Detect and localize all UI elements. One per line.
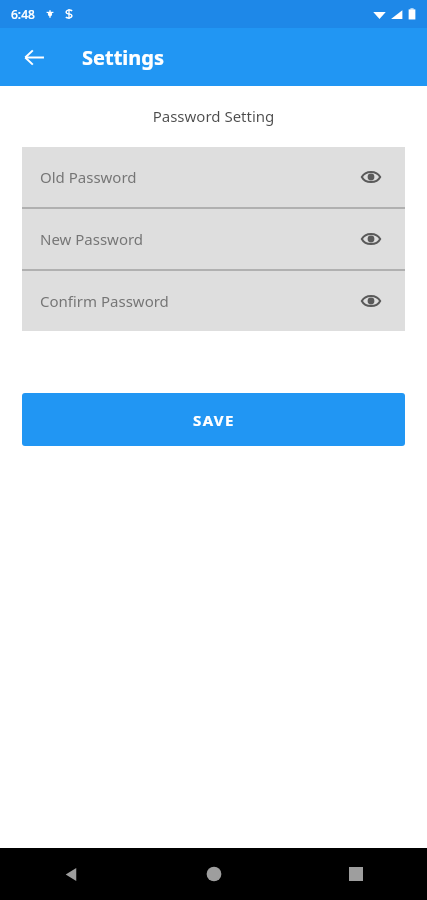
button[interactable]: Back (0, 848, 143, 900)
button[interactable]: Confirm Password (22, 271, 405, 331)
button[interactable]: Old Password (22, 147, 405, 207)
button[interactable]: Home (143, 848, 285, 900)
button[interactable]: New Password (22, 209, 405, 269)
staticText: Old Password (40, 167, 355, 187)
staticText: New Password (40, 229, 355, 249)
button[interactable]: Back (14, 37, 54, 77)
button[interactable]: SAVE (22, 393, 405, 446)
staticText: Settings (82, 44, 164, 71)
staticText: Password Setting (0, 106, 427, 126)
button[interactable]: Show password (355, 285, 387, 317)
button[interactable]: Show password (355, 161, 387, 193)
button[interactable]: Recent apps (285, 848, 427, 900)
staticText: SAVE (193, 410, 235, 430)
staticText: Confirm Password (40, 291, 355, 311)
staticText: 6:48 (11, 6, 35, 22)
button[interactable]: Show password (355, 223, 387, 255)
